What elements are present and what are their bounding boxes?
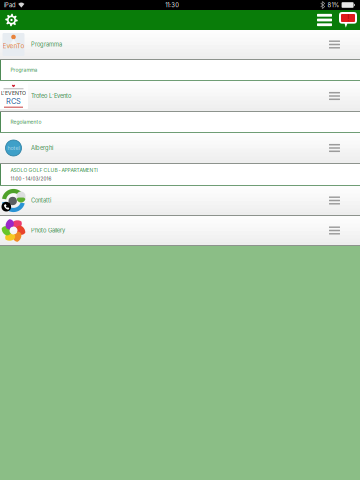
staticText: 11:00 - 14/03/2016 xyxy=(10,176,51,182)
staticText: Photo Gallery xyxy=(31,227,65,234)
staticText: EvenTo xyxy=(2,42,24,50)
staticText: RCS xyxy=(6,97,21,106)
staticText: Trofeo L`Evento xyxy=(31,92,71,99)
button[interactable]: Menu xyxy=(316,10,333,30)
staticText: ! xyxy=(347,13,349,23)
staticText: Contatti xyxy=(31,197,51,204)
staticText: Programma xyxy=(31,41,62,48)
button[interactable]: Photo Gallery xyxy=(0,216,360,246)
staticText: ASOLO GOLF CLUB - APPARTAMENTI xyxy=(10,167,97,173)
staticText: iPad xyxy=(4,1,16,9)
button[interactable]: EvenTo xyxy=(0,30,360,60)
staticText: 81% xyxy=(328,1,340,9)
button[interactable]: Contatti xyxy=(0,186,360,216)
button[interactable]: L'EVENTO xyxy=(0,81,360,112)
staticText: Regolamento xyxy=(10,119,41,125)
staticText: L'EVENTO xyxy=(1,90,26,96)
staticText: hotel xyxy=(7,145,19,151)
staticText: Programma xyxy=(10,67,37,73)
button[interactable]: Settings xyxy=(1,10,21,30)
button[interactable]: hotel xyxy=(0,133,360,164)
staticText: Alberghi xyxy=(31,144,53,151)
button[interactable]: Messages, 1 unread xyxy=(339,10,357,30)
staticText: 11:30 xyxy=(165,1,179,9)
